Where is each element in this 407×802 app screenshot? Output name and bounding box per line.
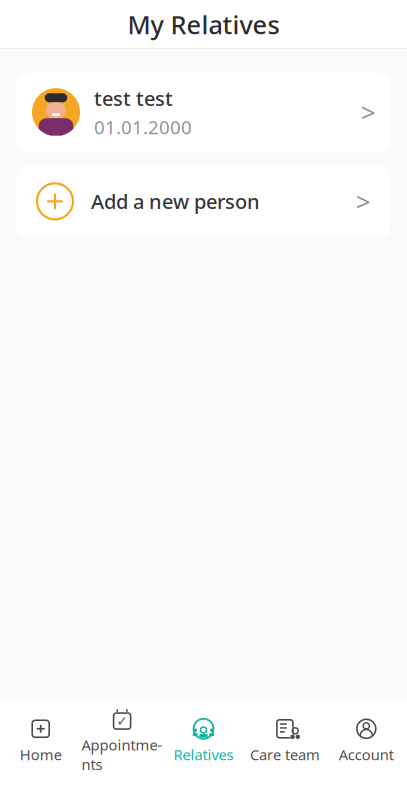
staticText: Home xyxy=(20,745,62,764)
button[interactable]: Care team xyxy=(244,710,326,772)
button[interactable]: test test xyxy=(16,73,391,151)
staticText: 01.01.2000 xyxy=(94,115,192,139)
staticText: > xyxy=(361,95,375,129)
staticText: Care team xyxy=(250,745,320,764)
staticText: Relatives xyxy=(173,745,233,764)
button[interactable]: Relatives xyxy=(163,710,244,772)
staticText: > xyxy=(356,184,370,218)
staticText: Account xyxy=(339,745,394,764)
staticText: ✓ xyxy=(117,713,128,729)
button[interactable]: Home xyxy=(0,710,81,772)
staticText: Appointments xyxy=(82,735,163,774)
staticText: Add a new person xyxy=(91,188,260,215)
staticText: My Relatives xyxy=(127,8,279,41)
staticText: test test xyxy=(94,85,173,112)
button[interactable]: Add a new person xyxy=(16,165,391,237)
button[interactable]: Account xyxy=(326,710,407,772)
button[interactable]: ✓ xyxy=(81,700,163,782)
